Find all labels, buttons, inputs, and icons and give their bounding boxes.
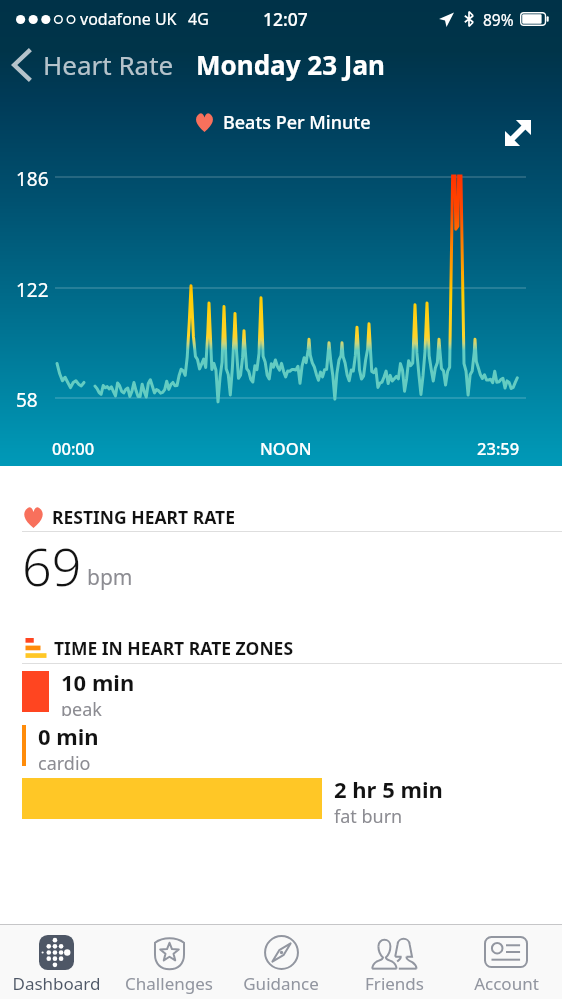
staticText: Monday 23 Jan [196,47,385,82]
staticText: Friends [365,972,424,995]
staticText: Account [474,972,539,995]
staticText: bpm [87,563,133,592]
button[interactable]: Account [450,925,562,999]
staticText: cardio [38,751,91,770]
staticText: 69 [22,530,82,601]
staticText: 122 [16,277,49,303]
staticText: 2 hr 5 min [334,774,443,804]
button[interactable]: Dashboard [0,925,112,999]
staticText: 23:59 [477,437,520,459]
button[interactable]: Heart Rate [0,42,180,87]
staticText: 186 [16,166,49,192]
staticText: Beats Per Minute [223,110,371,135]
staticText: fat burn [334,804,403,823]
staticText: 12:07 [263,7,308,31]
staticText: peak [61,697,102,716]
staticText: NOON [260,437,312,459]
staticText: 10 min [61,667,135,697]
staticText: Challenges [125,972,213,995]
button[interactable]: Guidance [225,925,337,999]
staticText: Guidance [243,972,319,995]
staticText: 58 [16,387,38,413]
staticText: 0 min [38,721,99,751]
staticText: 00:00 [52,437,95,459]
staticText: Heart Rate [43,47,174,82]
button[interactable]: Expand chart [495,110,541,156]
staticText: 4G [188,8,209,30]
button[interactable]: 0 min [22,721,562,770]
button[interactable]: Friends [338,925,450,999]
staticText: RESTING HEART RATE [52,505,235,529]
button[interactable]: 10 min [22,667,562,716]
staticText: vodafone UK [80,8,177,30]
button[interactable]: Challenges [113,925,225,999]
staticText: Dashboard [12,972,101,995]
staticText: 89% [483,9,514,30]
button[interactable]: 2 hr 5 min [22,774,562,823]
staticText: TIME IN HEART RATE ZONES [54,636,294,660]
